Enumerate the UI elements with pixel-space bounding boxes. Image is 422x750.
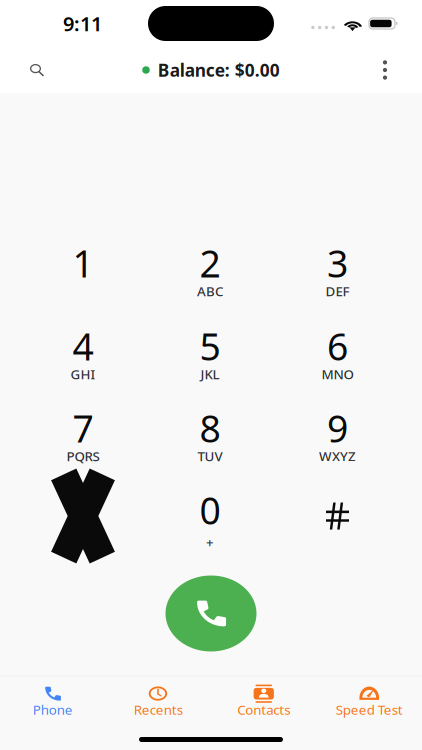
button[interactable]: 2 (154, 222, 266, 304)
button[interactable]: Recents (105, 676, 211, 724)
button[interactable]: 4 (27, 305, 139, 387)
staticText: 0 (199, 485, 220, 535)
staticText: JKL (200, 365, 219, 383)
button[interactable]: 3 (281, 222, 393, 304)
button[interactable]: Contacts (211, 676, 316, 724)
button[interactable]: Call (165, 575, 256, 651)
staticText: Speed Test (336, 701, 403, 718)
staticText: PQRS (66, 447, 99, 465)
button[interactable]: Search (14, 47, 60, 93)
staticText: 2 (199, 238, 220, 288)
staticText: 3 (327, 238, 348, 288)
staticText: 9 (327, 403, 348, 453)
staticText: MNO (321, 365, 353, 383)
staticText: 4 (72, 321, 93, 371)
staticText: 9:11 (63, 10, 102, 37)
staticText: DEF (325, 282, 349, 300)
staticText: GHI (70, 365, 95, 383)
button[interactable]: Speed Test (316, 676, 422, 724)
button[interactable]: 0 (154, 469, 266, 551)
staticText: TUV (197, 447, 222, 465)
button[interactable] (27, 475, 139, 557)
button[interactable]: Phone (0, 676, 105, 724)
staticText: + (206, 533, 214, 551)
button[interactable]: 9 (281, 387, 393, 469)
staticText: 1 (72, 238, 93, 288)
button[interactable]: 5 (154, 305, 266, 387)
staticText: Contacts (237, 701, 290, 718)
staticText: Phone (33, 701, 73, 718)
button[interactable]: 8 (154, 387, 266, 469)
staticText: Recents (134, 701, 183, 718)
staticText: Balance: $0.00 (158, 58, 280, 81)
button[interactable] (281, 475, 393, 557)
button[interactable]: More options (362, 47, 408, 93)
staticText: WXYZ (319, 447, 356, 465)
button[interactable]: 6 (281, 305, 393, 387)
staticText: ABC (197, 282, 223, 300)
button[interactable]: 7 (27, 387, 139, 469)
staticText: 5 (199, 321, 220, 371)
button[interactable]: 1 (27, 222, 139, 304)
staticText: 7 (72, 403, 93, 453)
staticText: 8 (199, 403, 220, 453)
staticText: 6 (327, 321, 348, 371)
